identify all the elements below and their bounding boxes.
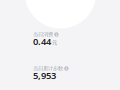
staticText: i xyxy=(56,32,57,37)
button[interactable]: 当日消费说明 xyxy=(33,32,59,37)
staticText: 元 xyxy=(52,39,57,46)
staticText: 当日累计步数 xyxy=(33,65,63,72)
staticText: 0.44 xyxy=(33,35,51,48)
staticText: i xyxy=(66,66,67,71)
staticText: 当日消费 xyxy=(33,31,53,38)
staticText: 5,953 xyxy=(33,69,56,82)
button[interactable]: 当日累计步数说明 xyxy=(33,66,69,71)
